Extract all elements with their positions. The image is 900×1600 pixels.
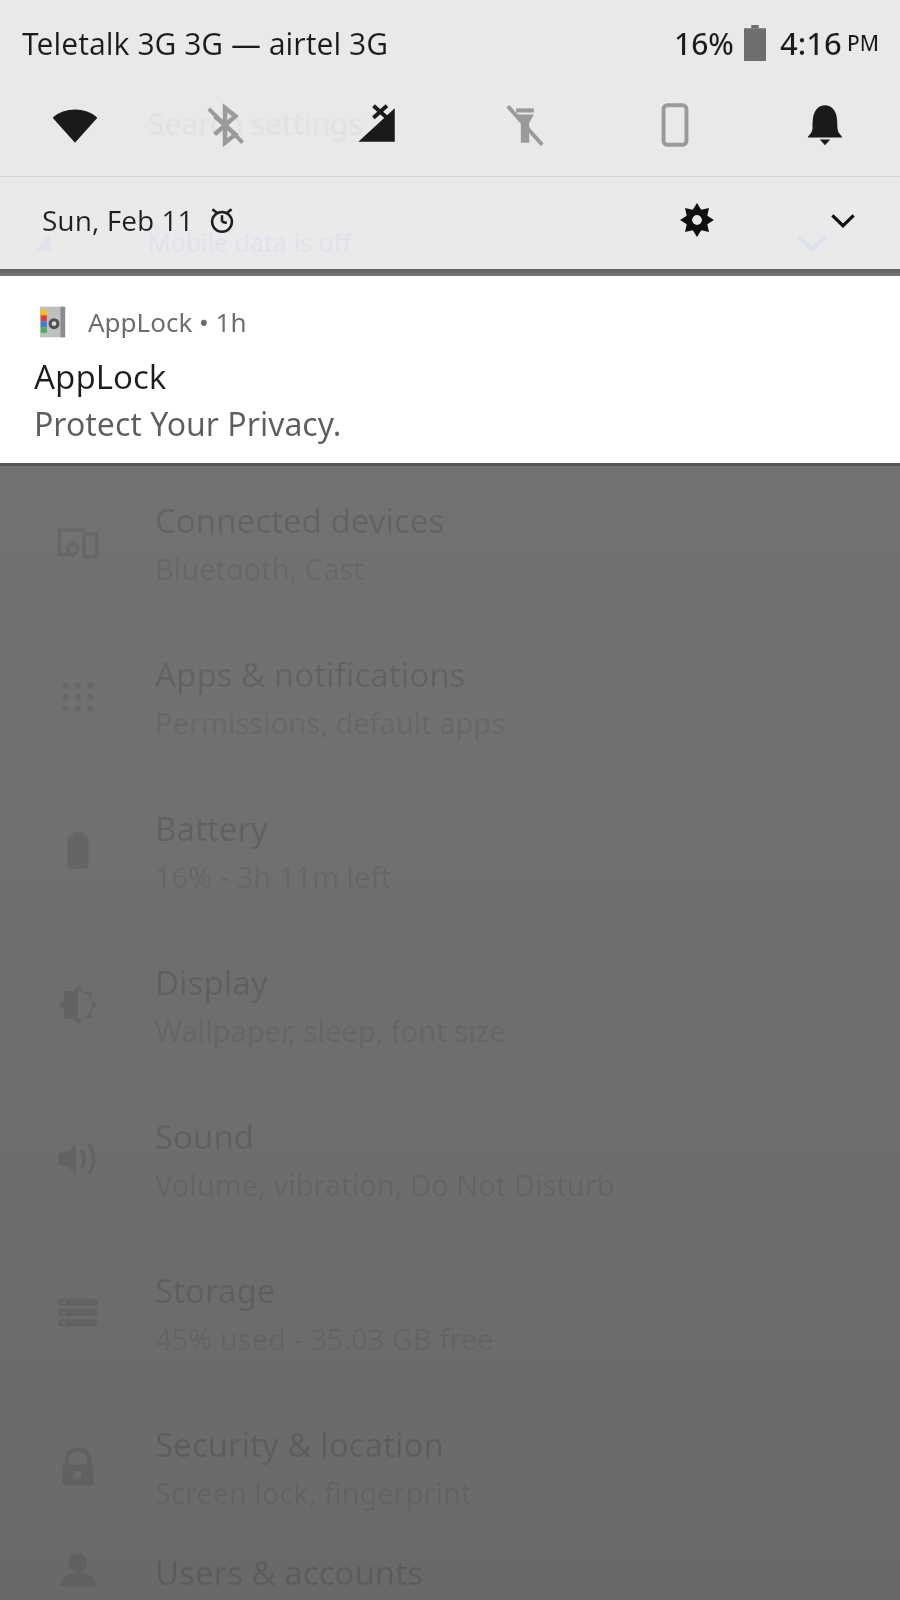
button[interactable]: Expand quick settings xyxy=(812,189,874,251)
staticText: Apps & notifications xyxy=(155,652,466,697)
staticText: PM xyxy=(847,29,880,58)
staticText: 16% xyxy=(674,23,734,64)
staticText: AppLock • 1h xyxy=(88,304,247,339)
staticText: Display xyxy=(155,960,268,1005)
button[interactable]: AppLock • 1h xyxy=(0,276,900,463)
button[interactable]: Settings xyxy=(666,189,728,251)
button[interactable]: Wi-Fi xyxy=(0,86,150,164)
button[interactable]: Flashlight off xyxy=(450,86,600,164)
staticText: 4:16 xyxy=(780,22,842,64)
staticText: AppLock xyxy=(34,354,167,399)
staticText: Mobile data is off xyxy=(148,225,351,259)
button[interactable]: Do not disturb xyxy=(750,86,900,164)
staticText: Storage xyxy=(155,1268,276,1313)
staticText: Sound xyxy=(155,1114,255,1159)
staticText: Search settings xyxy=(148,103,363,144)
staticText: Teletalk 3G 3G — airtel 3G xyxy=(22,23,389,64)
staticText: Permissions, default apps xyxy=(155,703,506,742)
staticText: Bluetooth, Cast xyxy=(155,549,364,588)
button[interactable]: Auto-rotate xyxy=(600,86,750,164)
staticText: Sun, Feb 11 xyxy=(42,201,194,239)
staticText: Users & accounts xyxy=(155,1550,423,1595)
button[interactable]: Mobile data off xyxy=(300,86,450,164)
staticText: Protect Your Privacy. xyxy=(34,402,342,446)
staticText: Volume, vibration, Do Not Disturb xyxy=(155,1165,615,1204)
staticText: Security & location xyxy=(155,1422,444,1467)
button[interactable]: Bluetooth off xyxy=(150,86,300,164)
staticText: Battery xyxy=(155,806,268,851)
staticText: Connected devices xyxy=(155,498,445,543)
